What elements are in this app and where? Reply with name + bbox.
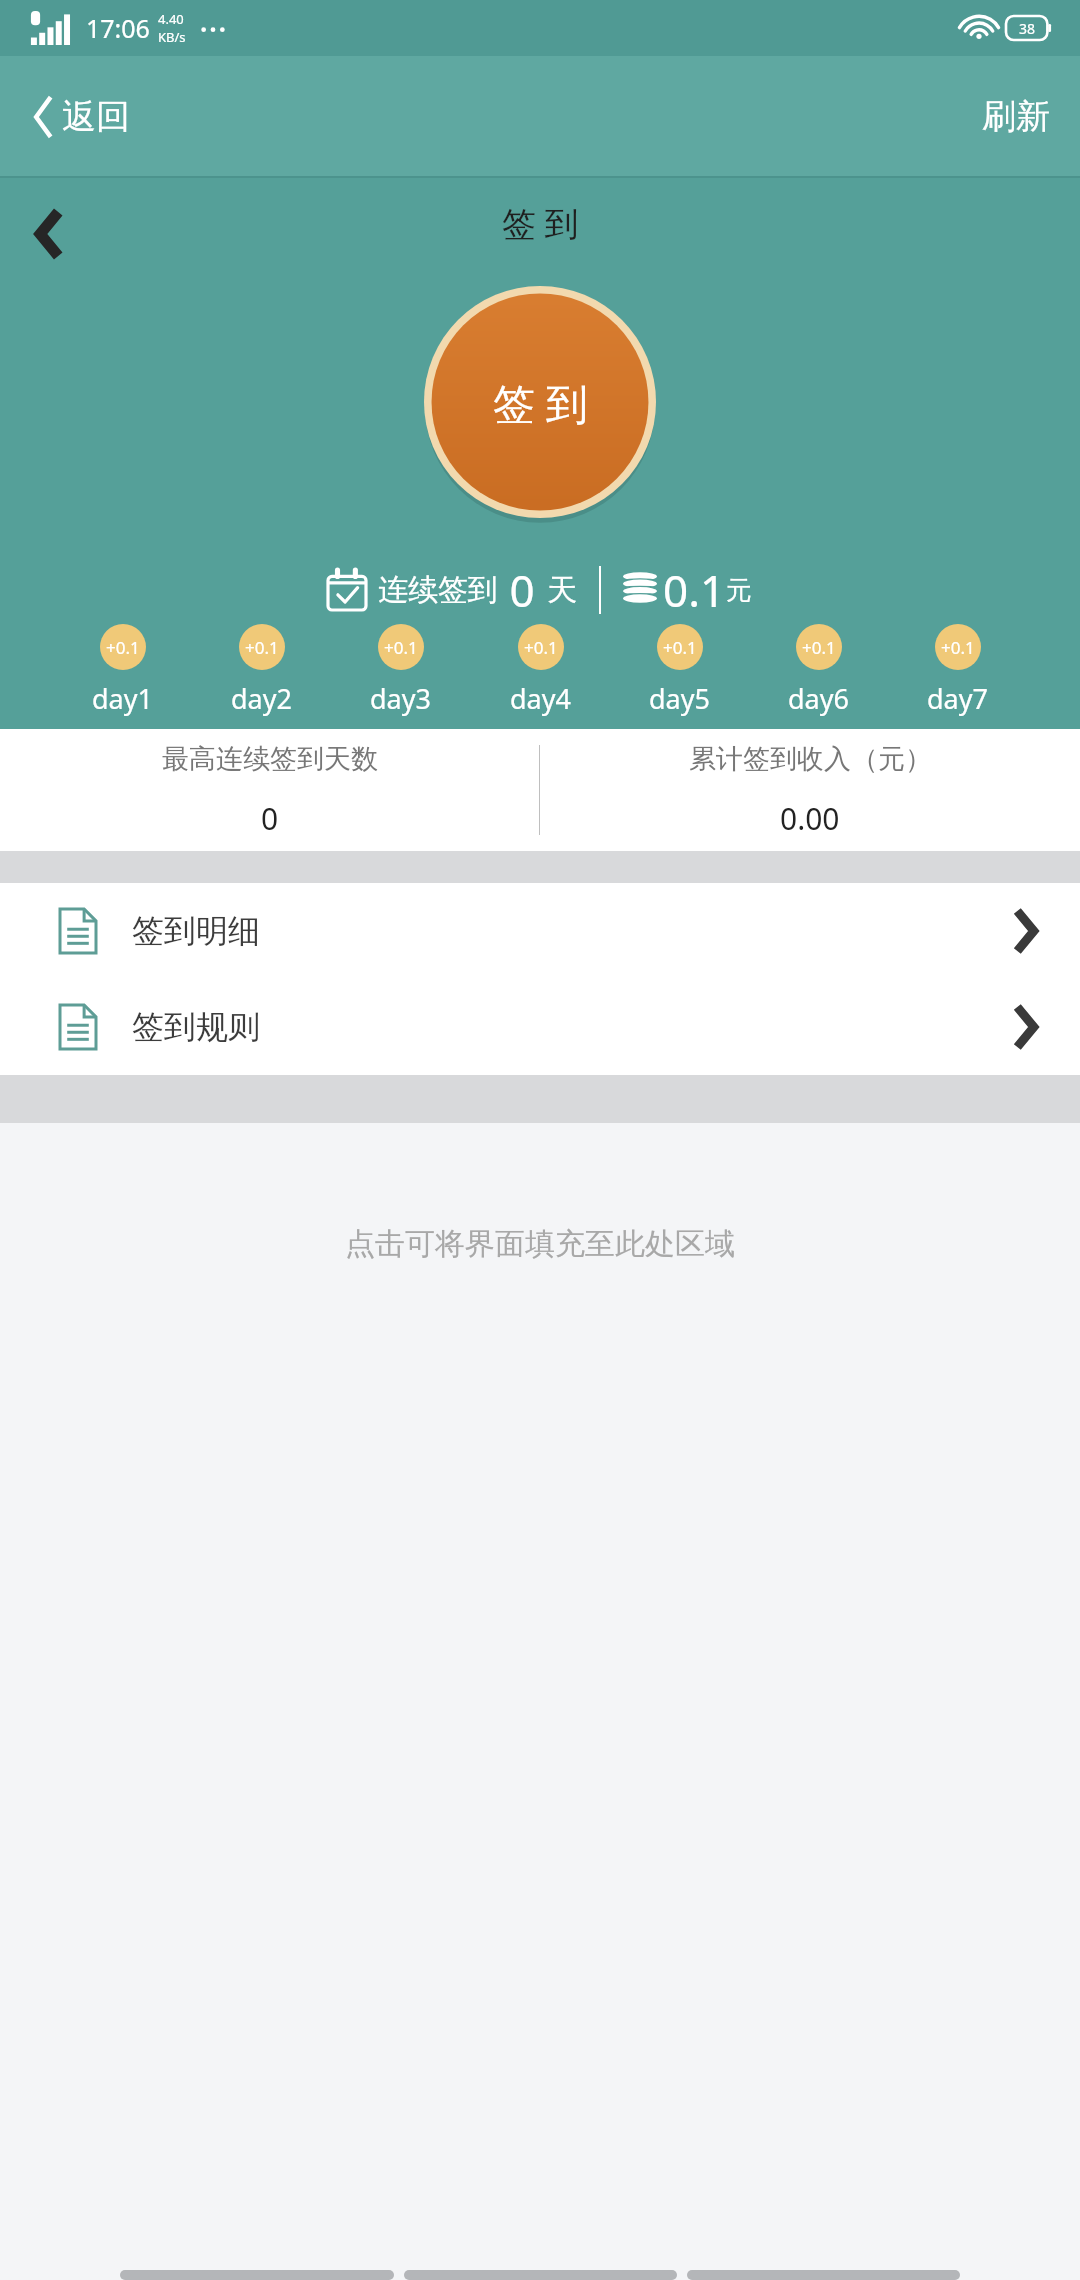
staticText: day6 (788, 680, 849, 717)
staticText: 签到明细 (132, 911, 260, 951)
staticText: +0.1 (941, 636, 975, 659)
staticText: day1 (92, 680, 153, 717)
button[interactable]: 签 到 (424, 286, 656, 518)
staticText: day5 (649, 680, 710, 717)
staticText: 签到规则 (132, 1007, 260, 1047)
staticText: +0.1 (524, 636, 558, 659)
staticText: day2 (231, 680, 292, 717)
staticText: day3 (370, 680, 431, 717)
button[interactable]: Back (26, 200, 72, 268)
staticText: +0.1 (245, 636, 279, 659)
button[interactable]: 签到明细 (0, 883, 1080, 979)
staticText: KB/s (158, 28, 186, 46)
staticText: +0.1 (106, 636, 140, 659)
staticText: +0.1 (802, 636, 836, 659)
staticText: 刷新 (982, 95, 1050, 138)
staticText: 最高连续签到天数 (162, 742, 378, 776)
staticText: 17:06 (86, 11, 150, 45)
staticText: 天 (547, 571, 577, 609)
staticText: 返回 (62, 95, 130, 138)
staticText: 0 (261, 798, 279, 839)
staticText: 4.40 (158, 10, 184, 28)
staticText: 签 到 (502, 200, 579, 246)
staticText: 38 (1019, 19, 1036, 38)
button[interactable]: 点击可将界面填充至此处区域 (345, 1225, 735, 1263)
button[interactable]: 签到规则 (0, 979, 1080, 1075)
staticText: day4 (510, 680, 571, 717)
staticText: 0.00 (780, 798, 840, 839)
staticText: +0.1 (384, 636, 418, 659)
staticText: 连续签到 (378, 571, 498, 609)
staticText: 累计签到收入（元） (689, 742, 932, 776)
staticText: day7 (927, 680, 988, 717)
button[interactable]: 返回 (0, 85, 150, 148)
staticText: 0.1 (663, 560, 726, 620)
staticText: 0 (498, 560, 547, 620)
staticText: 元 (726, 574, 752, 607)
button[interactable]: 刷新 (952, 83, 1080, 150)
staticText: +0.1 (663, 636, 697, 659)
staticText: 签 到 (493, 374, 588, 431)
